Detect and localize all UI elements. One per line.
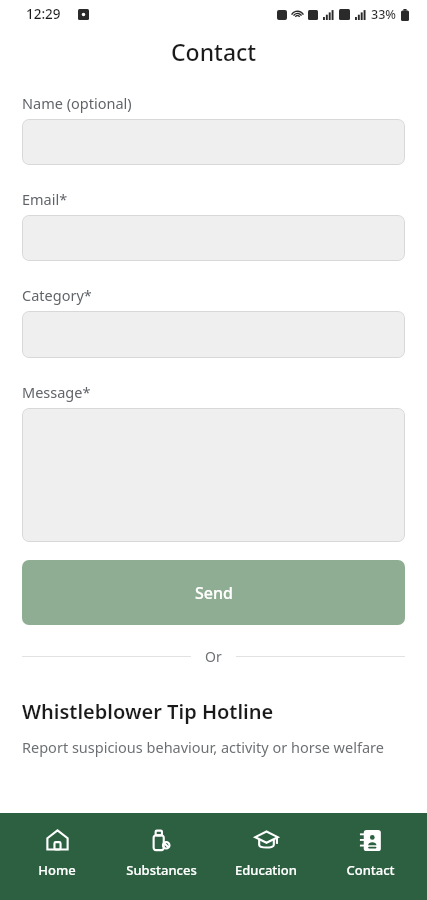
staticText: Education [235,861,297,879]
button[interactable] [22,408,405,542]
staticText: Name (optional) [22,93,132,113]
button[interactable] [22,311,405,358]
staticText: 12:29 [26,5,61,23]
staticText: Email* [22,189,68,209]
button[interactable]: Home [10,827,104,879]
staticText: Contact [171,36,257,67]
button[interactable] [22,215,405,261]
staticText: Whistleblower Tip Hotline [22,698,274,725]
button[interactable]: Substances [114,827,208,879]
staticText: Contact [346,861,395,879]
button[interactable] [22,119,405,165]
staticText: Home [38,861,76,879]
button[interactable]: Send [22,560,405,625]
staticText: Or [205,647,222,666]
staticText: Send [195,582,233,604]
staticText: Category* [22,285,92,305]
staticText: Substances [126,861,197,879]
button[interactable]: Education [219,827,313,879]
button[interactable]: Contact [323,827,417,879]
staticText: Report suspicious behaviour, activity or… [22,737,384,757]
staticText: 33% [371,6,396,23]
staticText: Message* [22,382,91,402]
